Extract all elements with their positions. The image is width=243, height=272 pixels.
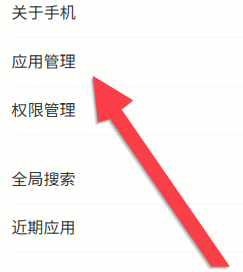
staticText: 关于手机 (11, 0, 75, 23)
button[interactable]: 关于手机 (0, 0, 243, 37)
staticText: 应用管理 (11, 49, 75, 72)
button[interactable]: 全局搜索 (0, 155, 243, 203)
staticText: 近期应用 (11, 215, 75, 238)
staticText: 权限管理 (11, 97, 75, 121)
button[interactable]: 应用管理 (0, 38, 243, 86)
staticText: 全局搜索 (11, 166, 75, 190)
button[interactable]: 近期应用 (0, 204, 243, 252)
button[interactable]: 权限管理 (0, 86, 243, 134)
